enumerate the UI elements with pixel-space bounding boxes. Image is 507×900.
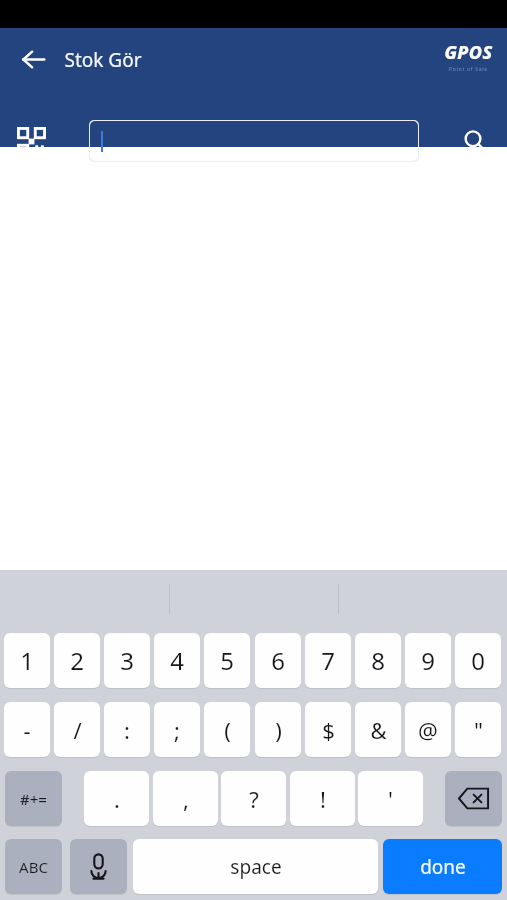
- staticText: ": [474, 715, 483, 745]
- staticText: &: [370, 715, 387, 745]
- staticText: (: [224, 715, 231, 745]
- button[interactable]: :: [104, 702, 150, 757]
- staticText: 4: [170, 644, 184, 677]
- button[interactable]: Voice input: [70, 839, 127, 894]
- button[interactable]: @: [405, 702, 451, 757]
- button[interactable]: ABC: [5, 839, 62, 894]
- button[interactable]: 4: [154, 633, 200, 688]
- staticText: ABC: [19, 857, 48, 877]
- staticText: ?: [249, 784, 259, 814]
- button[interactable]: 0: [455, 633, 501, 688]
- button[interactable]: &: [355, 702, 401, 757]
- staticText: ;: [174, 715, 180, 745]
- staticText: 5: [220, 644, 234, 677]
- staticText: ': [388, 784, 393, 814]
- staticText: 1: [20, 644, 34, 677]
- button[interactable]: 2: [54, 633, 100, 688]
- staticText: :: [124, 715, 130, 745]
- button[interactable]: ,: [153, 771, 218, 826]
- button[interactable]: !: [290, 771, 355, 826]
- staticText: #+=: [20, 789, 47, 809]
- staticText: /: [73, 715, 82, 745]
- button[interactable]: Scan barcode: [6, 116, 56, 166]
- button[interactable]: ": [455, 702, 501, 757]
- button[interactable]: 3: [104, 633, 150, 688]
- button[interactable]: done: [383, 839, 502, 894]
- staticText: 7: [321, 644, 335, 677]
- button[interactable]: 7: [305, 633, 351, 688]
- button[interactable]: (: [204, 702, 250, 757]
- staticText: 8: [371, 644, 385, 677]
- staticText: ): [275, 715, 282, 745]
- button[interactable]: ': [358, 771, 423, 826]
- button[interactable]: $: [305, 702, 351, 757]
- staticText: -: [23, 715, 31, 745]
- staticText: $: [322, 715, 335, 745]
- button[interactable]: [89, 120, 419, 162]
- button[interactable]: Search: [452, 118, 498, 164]
- button[interactable]: /: [54, 702, 100, 757]
- button[interactable]: 1: [4, 633, 50, 688]
- staticText: 6: [271, 644, 285, 677]
- staticText: 0: [471, 644, 485, 677]
- staticText: done: [420, 854, 466, 880]
- staticText: 2: [70, 644, 84, 677]
- button[interactable]: ;: [154, 702, 200, 757]
- staticText: Stok Gör: [64, 47, 142, 73]
- staticText: .: [114, 784, 120, 814]
- staticText: space: [230, 854, 282, 880]
- staticText: 3: [120, 644, 134, 677]
- button[interactable]: 9: [405, 633, 451, 688]
- button[interactable]: .: [84, 771, 149, 826]
- button[interactable]: #+=: [5, 771, 62, 826]
- button[interactable]: space: [133, 839, 378, 894]
- staticText: @: [418, 715, 438, 745]
- button[interactable]: Back: [11, 37, 55, 81]
- staticText: !: [320, 784, 326, 814]
- staticText: 9: [421, 644, 435, 677]
- button[interactable]: 8: [355, 633, 401, 688]
- button[interactable]: 5: [204, 633, 250, 688]
- button[interactable]: ): [255, 702, 301, 757]
- button[interactable]: -: [4, 702, 50, 757]
- staticText: GPOS: [444, 40, 493, 65]
- staticText: Point of Sale: [449, 66, 488, 73]
- button[interactable]: ?: [221, 771, 286, 826]
- button[interactable]: Backspace: [445, 771, 502, 826]
- button[interactable]: 6: [255, 633, 301, 688]
- staticText: ,: [183, 784, 189, 814]
